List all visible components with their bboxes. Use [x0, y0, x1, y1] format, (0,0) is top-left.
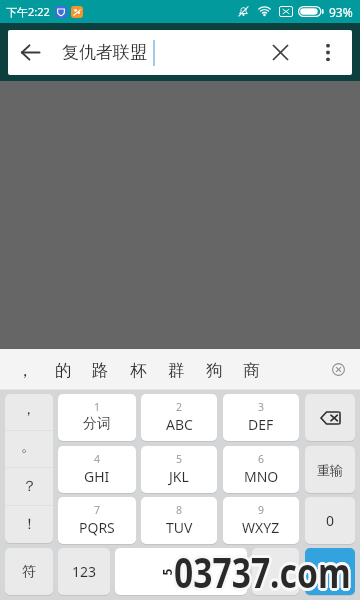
button[interactable]: ，	[5, 394, 53, 430]
staticText: 0	[326, 511, 335, 530]
staticText: 03737.com	[172, 545, 349, 600]
staticText: 重输	[317, 462, 343, 478]
staticText: 03737.com	[172, 543, 348, 600]
button[interactable]: 1	[58, 394, 136, 441]
staticText: 03737.com	[176, 545, 352, 600]
button[interactable]: 3	[223, 394, 299, 441]
staticText: 03737.com	[173, 541, 350, 598]
staticText: PQRS	[79, 518, 115, 537]
staticText: 03737.com	[172, 542, 349, 599]
staticText: 03737.com	[176, 543, 352, 600]
button[interactable]: 5	[141, 446, 217, 493]
button[interactable]: 路	[82, 349, 119, 390]
button[interactable]: ？	[5, 468, 53, 505]
staticText: 93%	[329, 4, 353, 20]
staticText: TUV	[166, 518, 193, 537]
button[interactable]: 商	[233, 349, 270, 390]
staticText: ABC	[166, 415, 193, 434]
button[interactable]: Clear text	[257, 30, 304, 75]
button[interactable]: 9	[223, 497, 299, 544]
staticText: 03737.com	[175, 541, 352, 598]
staticText: 03737.com	[173, 542, 350, 599]
button[interactable]: 符	[5, 548, 53, 595]
staticText: 4	[94, 452, 101, 466]
staticText: 杯	[130, 360, 147, 381]
staticText: DEF	[248, 415, 274, 434]
staticText: WXYZ	[242, 518, 280, 537]
staticText: MNO	[244, 467, 279, 486]
button[interactable]: 123	[58, 548, 110, 595]
staticText: 03737.com	[173, 544, 350, 600]
button[interactable]: 8	[141, 497, 217, 544]
staticText: 03737.com	[173, 543, 350, 600]
staticText: 路	[92, 360, 109, 381]
button[interactable]: 狗	[196, 349, 233, 390]
staticText: 03737.com	[176, 543, 353, 600]
staticText: 1	[94, 400, 101, 414]
staticText: 6	[258, 452, 265, 466]
staticText: ？	[22, 477, 37, 496]
staticText: 03737.com	[175, 543, 352, 600]
staticText: 03737.com	[176, 541, 352, 598]
staticText: 03737.com	[174, 542, 351, 599]
button[interactable]: 。	[5, 431, 53, 467]
staticText: 群	[168, 360, 185, 381]
button[interactable]: 7	[58, 497, 136, 544]
button[interactable]: Backspace	[305, 394, 355, 441]
button[interactable]: Symbols	[252, 548, 299, 595]
button[interactable]: ，	[7, 349, 44, 390]
staticText: ，	[21, 400, 36, 419]
staticText: 8	[176, 503, 183, 517]
staticText: 3	[258, 400, 265, 414]
staticText: 7	[94, 503, 101, 517]
staticText: 03737.com	[174, 544, 351, 600]
button[interactable]: 4	[58, 446, 136, 493]
staticText: 商	[243, 360, 260, 381]
staticText: 03737.com	[175, 544, 352, 600]
staticText: 。	[21, 437, 36, 456]
button[interactable]: Back	[8, 30, 52, 75]
staticText: 狗	[206, 360, 223, 381]
staticText: 03737.com	[174, 540, 351, 597]
staticText: 的	[55, 360, 72, 381]
staticText: GHI	[84, 467, 110, 486]
button[interactable]: 6	[223, 446, 299, 493]
button[interactable]: 0	[305, 497, 355, 544]
staticText: 03737.com	[176, 542, 352, 599]
staticText: 03737.com	[173, 545, 350, 600]
button[interactable]: 2	[141, 394, 217, 441]
staticText: 5	[158, 568, 174, 575]
staticText: 03737.com	[172, 543, 349, 600]
staticText: 复仇者联盟	[62, 42, 147, 63]
button[interactable]: Space	[115, 548, 247, 595]
staticText: 下午2:22	[6, 4, 50, 19]
staticText: 分词	[83, 415, 111, 433]
staticText: 03737.com	[176, 544, 352, 600]
button[interactable]: 杯	[120, 349, 157, 390]
staticText: JKL	[169, 467, 189, 486]
staticText: 03737.com	[174, 541, 351, 598]
button[interactable]: 的	[45, 349, 82, 390]
button[interactable]: More options	[304, 30, 352, 75]
staticText: 03737.com	[172, 541, 349, 598]
staticText: 03737.com	[175, 542, 352, 599]
staticText: 123	[72, 562, 97, 581]
staticText: 03737.com	[172, 544, 349, 600]
staticText: 03737.com	[174, 546, 351, 600]
staticText: 符	[22, 563, 36, 581]
staticText: ！	[22, 515, 37, 534]
button[interactable]: 重输	[305, 446, 355, 493]
staticText: ，	[17, 360, 34, 381]
button[interactable]: Hide keyboard	[320, 349, 356, 390]
staticText: 03737.com	[174, 543, 351, 600]
staticText: 5	[176, 452, 183, 466]
staticText: 03737.com	[174, 543, 351, 600]
staticText: 03737.com	[175, 545, 352, 600]
staticText: 03737.com	[174, 545, 351, 600]
button[interactable]: 群	[158, 349, 195, 390]
button[interactable]: ！	[5, 506, 53, 543]
button[interactable]: Search	[305, 548, 355, 595]
staticText: 9	[258, 503, 265, 517]
staticText: 2	[176, 400, 183, 414]
